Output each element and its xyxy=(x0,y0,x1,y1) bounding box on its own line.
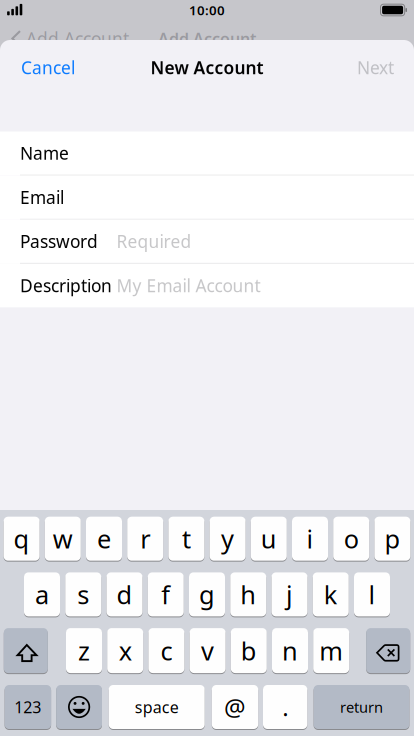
staticText: Name xyxy=(20,142,69,165)
button[interactable]: space xyxy=(109,684,205,729)
button[interactable]: Description xyxy=(0,264,414,307)
button[interactable]: return xyxy=(314,684,409,729)
button[interactable]: c xyxy=(148,628,184,674)
staticText: s xyxy=(77,578,89,611)
staticText: Add Account xyxy=(158,28,256,49)
button[interactable]: Name xyxy=(0,131,414,176)
staticText: Cancel xyxy=(21,56,75,79)
staticText: return xyxy=(340,697,383,717)
staticText: i xyxy=(306,522,313,555)
button[interactable]: h xyxy=(230,572,266,617)
button[interactable]: d xyxy=(106,572,142,617)
staticText: x xyxy=(119,634,132,667)
button[interactable]: Emoji xyxy=(56,684,102,729)
button[interactable]: u xyxy=(251,516,287,561)
button[interactable]: b xyxy=(231,628,267,674)
button[interactable]: z xyxy=(66,628,102,674)
button[interactable]: f xyxy=(148,572,184,617)
staticText: l xyxy=(368,578,375,611)
staticText: Add Account xyxy=(26,27,129,50)
button[interactable]: t xyxy=(168,516,204,561)
staticText: u xyxy=(261,522,277,555)
button[interactable]: w xyxy=(45,516,81,561)
staticText: 123 xyxy=(14,696,41,718)
button[interactable]: p xyxy=(374,516,410,561)
button[interactable]: Email xyxy=(0,176,414,220)
button[interactable]: e xyxy=(86,516,122,561)
button[interactable]: j xyxy=(271,572,307,617)
staticText: Email xyxy=(20,186,64,209)
staticText: t xyxy=(182,522,191,555)
staticText: space xyxy=(135,696,179,718)
staticText: Description xyxy=(20,274,112,297)
staticText: n xyxy=(282,634,298,667)
button[interactable]: i xyxy=(292,516,328,561)
staticText: o xyxy=(344,522,359,555)
staticText: v xyxy=(201,634,214,667)
button[interactable]: Shift xyxy=(4,628,48,674)
button[interactable]: . xyxy=(263,684,307,729)
staticText: Next xyxy=(357,56,394,79)
button[interactable]: 123 xyxy=(5,684,51,729)
staticText: d xyxy=(116,578,132,611)
button[interactable]: o xyxy=(333,516,369,561)
button[interactable]: Cancel xyxy=(0,45,86,89)
staticText: 10:00 xyxy=(189,1,225,19)
button[interactable]: q xyxy=(4,516,40,561)
staticText: . xyxy=(282,691,288,723)
staticText: New Account xyxy=(150,56,263,79)
staticText: c xyxy=(160,634,172,667)
button[interactable]: m xyxy=(313,628,349,674)
button[interactable]: @ xyxy=(212,684,258,729)
staticText: y xyxy=(221,522,234,555)
button[interactable]: y xyxy=(210,516,246,561)
button[interactable]: Delete xyxy=(366,628,410,674)
button[interactable]: v xyxy=(190,628,226,674)
staticText: f xyxy=(161,578,170,611)
button[interactable]: l xyxy=(354,572,390,617)
button[interactable]: a xyxy=(24,572,60,617)
button[interactable]: Next xyxy=(346,45,414,89)
staticText: q xyxy=(14,522,30,555)
button[interactable]: Password xyxy=(0,220,414,264)
staticText: e xyxy=(97,522,111,555)
staticText: b xyxy=(241,634,257,667)
staticText: Password xyxy=(20,230,98,253)
staticText: g xyxy=(199,578,215,611)
button[interactable]: n xyxy=(272,628,308,674)
button[interactable]: s xyxy=(65,572,101,617)
staticText: My Email Account xyxy=(116,274,260,297)
staticText: p xyxy=(384,522,400,555)
button[interactable]: k xyxy=(313,572,349,617)
staticText: @ xyxy=(224,691,246,723)
button[interactable]: r xyxy=(127,516,163,561)
staticText: h xyxy=(240,578,256,611)
staticText: a xyxy=(35,578,49,611)
button[interactable]: x xyxy=(107,628,143,674)
staticText: r xyxy=(140,522,150,555)
staticText: z xyxy=(78,634,90,667)
staticText: w xyxy=(53,522,73,555)
staticText: j xyxy=(286,578,293,611)
button[interactable]: g xyxy=(189,572,225,617)
staticText: k xyxy=(324,578,338,611)
staticText: Required xyxy=(116,230,191,253)
staticText: m xyxy=(319,634,343,667)
